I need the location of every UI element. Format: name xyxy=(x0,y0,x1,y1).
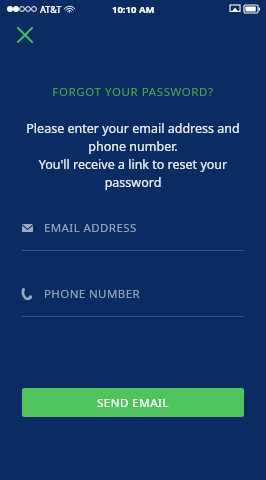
staticText: FORGOT YOUR PASSWORD? xyxy=(52,84,214,100)
button[interactable]: SEND EMAIL xyxy=(22,388,244,417)
button[interactable]: Phone number field xyxy=(22,283,244,317)
staticText: SEND EMAIL xyxy=(97,395,169,411)
button[interactable]: Close xyxy=(12,22,38,48)
staticText: PHONE NUMBER xyxy=(44,286,140,302)
button[interactable]: Email address field xyxy=(22,217,244,251)
staticText: AT&T xyxy=(40,3,62,15)
staticText: EMAIL ADDRESS xyxy=(44,220,137,236)
staticText: 10:10 AM xyxy=(112,3,155,16)
staticText: Please enter your email address and phon… xyxy=(22,120,244,191)
